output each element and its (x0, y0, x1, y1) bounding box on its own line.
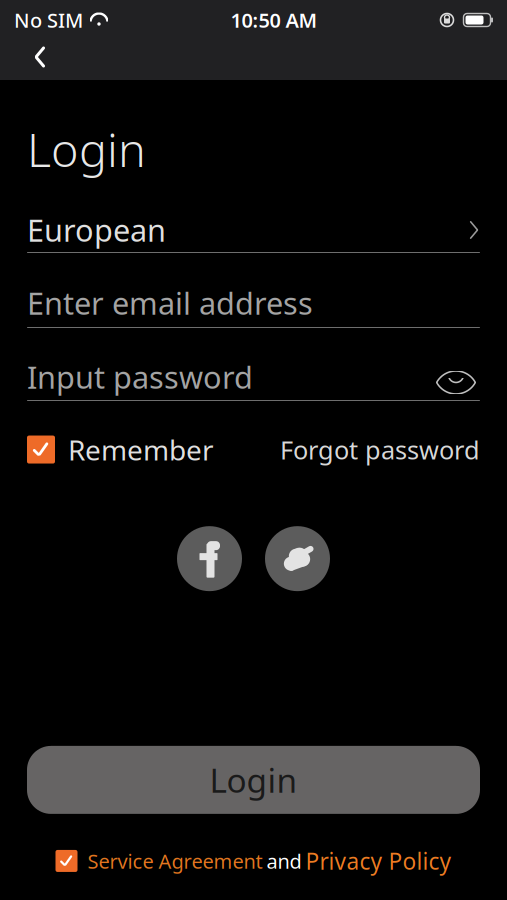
staticText: Input password (27, 357, 253, 397)
staticText: European (27, 210, 166, 250)
button[interactable]: Sign in with Facebook (177, 526, 242, 591)
staticText: Remember (68, 431, 214, 468)
staticText: Login (27, 118, 146, 180)
staticText: Service Agreement (87, 848, 262, 874)
staticText: Login (209, 758, 297, 802)
button[interactable]: Back (18, 37, 62, 77)
button[interactable]: Show password (432, 357, 480, 397)
button[interactable]: Sign in with Twitter (265, 526, 330, 591)
staticText: Privacy Policy (305, 846, 451, 876)
button[interactable]: Forgot password (280, 433, 480, 466)
staticText: Enter email address (27, 283, 313, 323)
button[interactable]: Remember (27, 431, 214, 468)
button[interactable]: Login (27, 746, 480, 814)
staticText: 10:50 AM (230, 7, 317, 33)
button[interactable]: Service Agreement (55, 846, 451, 876)
button[interactable]: European (0, 208, 507, 253)
staticText: and (266, 848, 301, 874)
staticText: Forgot password (280, 433, 480, 466)
staticText: No SIM (14, 7, 83, 33)
button[interactable]: Enter email address (0, 279, 507, 328)
